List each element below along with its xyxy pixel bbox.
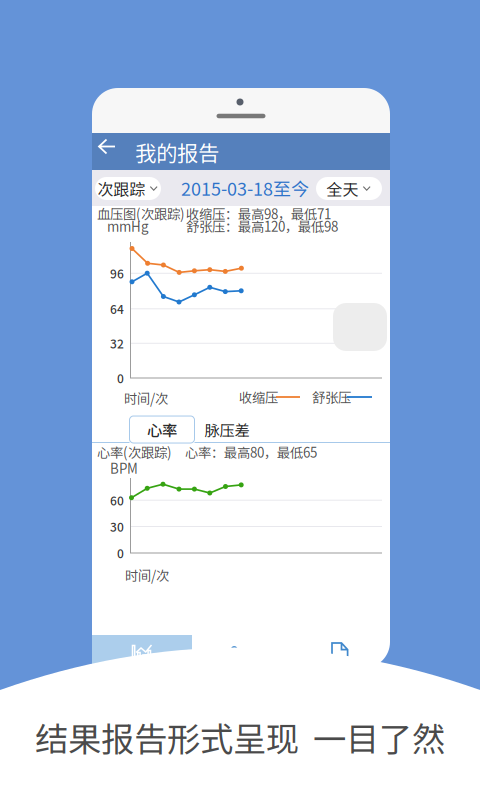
button[interactable]: Back — [98, 137, 128, 167]
button[interactable]: Reports — [290, 635, 389, 669]
staticText: 2015-03-18至今 — [181, 175, 309, 201]
staticText: 60 — [110, 491, 124, 509]
button[interactable]: Trends — [92, 635, 192, 669]
staticText: 舒张压 — [312, 387, 351, 407]
staticText: BPM — [110, 458, 138, 478]
button[interactable]: 心率 — [129, 416, 194, 443]
staticText: 0 — [117, 544, 124, 562]
staticText: 收缩压：最高98，最低71 — [186, 204, 331, 223]
staticText: 30 — [110, 518, 124, 535]
button[interactable]: 脉压差 — [195, 416, 259, 443]
staticText: 心率 — [147, 418, 177, 441]
button[interactable]: 2015-03-18至今 — [180, 177, 310, 199]
staticText: 脉压差 — [204, 418, 249, 441]
staticText: 32 — [110, 335, 124, 352]
staticText: 舒张压：最高120，最低98 — [186, 216, 338, 236]
staticText: 96 — [110, 265, 124, 282]
button[interactable]: 全天 — [316, 177, 382, 200]
staticText: 全天 — [326, 177, 358, 200]
staticText: 次跟踪 — [97, 177, 145, 200]
staticText: 我的报告 — [135, 137, 219, 167]
staticText: 血压图(次跟踪) — [97, 204, 185, 223]
button[interactable]: 次跟踪 — [95, 177, 161, 200]
staticText: 结果报告形式呈现 一目了然 — [35, 713, 445, 761]
staticText: 心率：最高80，最低65 — [185, 442, 317, 462]
staticText: 64 — [110, 300, 124, 317]
staticText: 0 — [117, 369, 124, 387]
staticText: 心率(次跟踪) — [97, 442, 172, 462]
button[interactable]: Records — [191, 635, 290, 669]
staticText: 时间/次 — [125, 565, 169, 585]
staticText: 时间/次 — [124, 388, 168, 408]
staticText: 收缩压 — [239, 387, 278, 407]
staticText: mmHg — [107, 216, 149, 236]
